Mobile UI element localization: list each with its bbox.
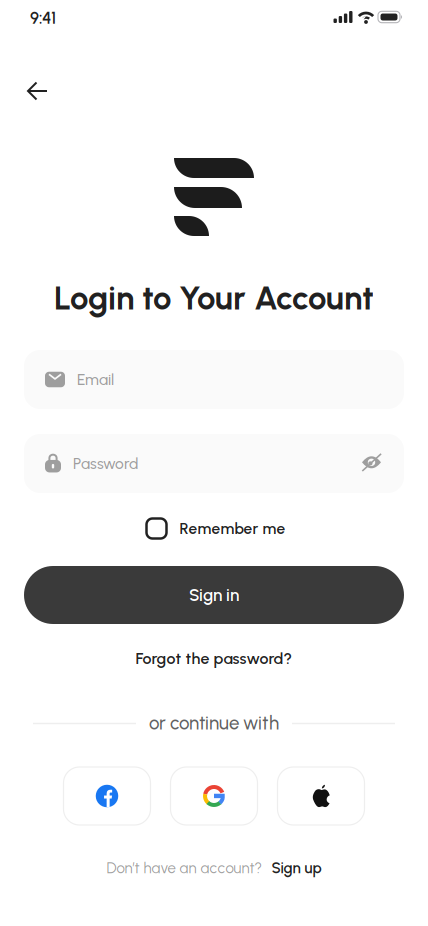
button[interactable]: Sign up (271, 859, 321, 877)
button[interactable]: Continue with Apple (277, 767, 364, 825)
button[interactable]: Sign in (24, 566, 404, 624)
staticText: Email (77, 370, 114, 389)
button[interactable]: Forgot the password? (135, 649, 292, 668)
staticText: Sign up (271, 859, 321, 877)
staticText: Password (73, 454, 138, 473)
staticText: 9:41 (30, 8, 56, 28)
staticText: Remember me (179, 519, 285, 538)
button[interactable]: Remember me (146, 518, 285, 538)
staticText: or continue with (149, 712, 279, 734)
staticText: Sign in (189, 585, 239, 605)
staticText: Login to Your Account (54, 278, 374, 318)
button[interactable]: Continue with Google (170, 767, 257, 825)
staticText: Forgot the password? (135, 649, 292, 668)
button[interactable]: Password (24, 434, 404, 493)
button[interactable]: Continue with Facebook (63, 767, 150, 825)
staticText: Don’t have an account? (106, 859, 262, 877)
button[interactable]: Back (19, 73, 56, 108)
button[interactable]: Email (24, 350, 404, 409)
